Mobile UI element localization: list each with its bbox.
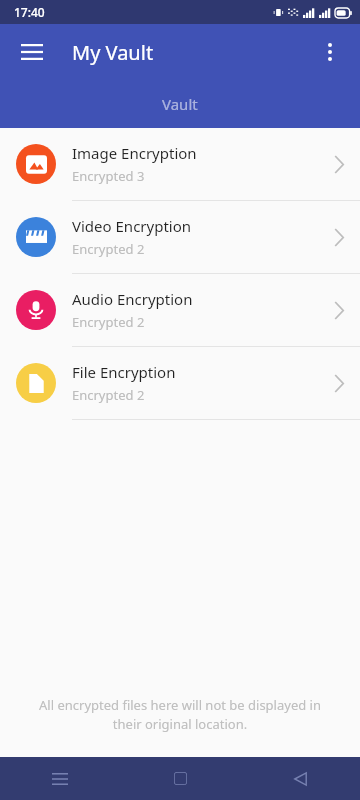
staticText: Encrypted 3 xyxy=(72,167,145,185)
button[interactable]: Home xyxy=(120,757,240,800)
staticText: Audio Encryption xyxy=(72,289,193,309)
staticText: Encrypted 2 xyxy=(72,386,145,404)
staticText: Image Encryption xyxy=(72,143,197,163)
staticText: All encrypted files here will not be dis… xyxy=(24,696,336,733)
staticText: My Vault xyxy=(72,39,154,66)
staticText: 17:40 xyxy=(14,4,45,20)
staticText: Encrypted 2 xyxy=(72,313,145,331)
staticText: Vault xyxy=(162,94,198,114)
staticText: Encrypted 2 xyxy=(72,240,145,258)
button[interactable]: File Encryption xyxy=(0,347,360,419)
button[interactable]: Recent apps xyxy=(0,757,120,800)
staticText: Video Encryption xyxy=(72,216,192,236)
button[interactable]: Video Encryption xyxy=(0,201,360,273)
button[interactable]: More options xyxy=(306,28,354,76)
button[interactable]: Back xyxy=(240,757,360,800)
button[interactable]: Open navigation menu xyxy=(8,28,56,76)
staticText: File Encryption xyxy=(72,362,176,382)
button[interactable]: Vault xyxy=(0,80,360,128)
button[interactable]: Audio Encryption xyxy=(0,274,360,346)
button[interactable]: Image Encryption xyxy=(0,128,360,200)
